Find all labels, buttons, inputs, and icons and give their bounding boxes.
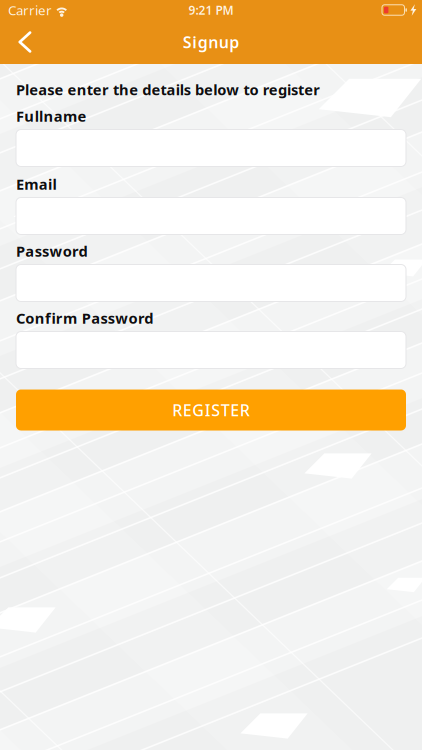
staticText: Fullname xyxy=(16,106,86,126)
staticText: 9:21 PM xyxy=(188,2,233,18)
staticText: Email xyxy=(16,174,56,194)
staticText: REGISTER xyxy=(172,399,250,421)
staticText: Carrier xyxy=(8,1,52,19)
staticText: Confirm Password xyxy=(16,308,153,328)
staticText: Password xyxy=(16,241,87,261)
staticText: Signup xyxy=(183,31,239,53)
button[interactable]: REGISTER xyxy=(16,389,406,430)
button[interactable]: Back xyxy=(4,22,46,62)
staticText: Please enter the details below to regist… xyxy=(16,80,320,99)
